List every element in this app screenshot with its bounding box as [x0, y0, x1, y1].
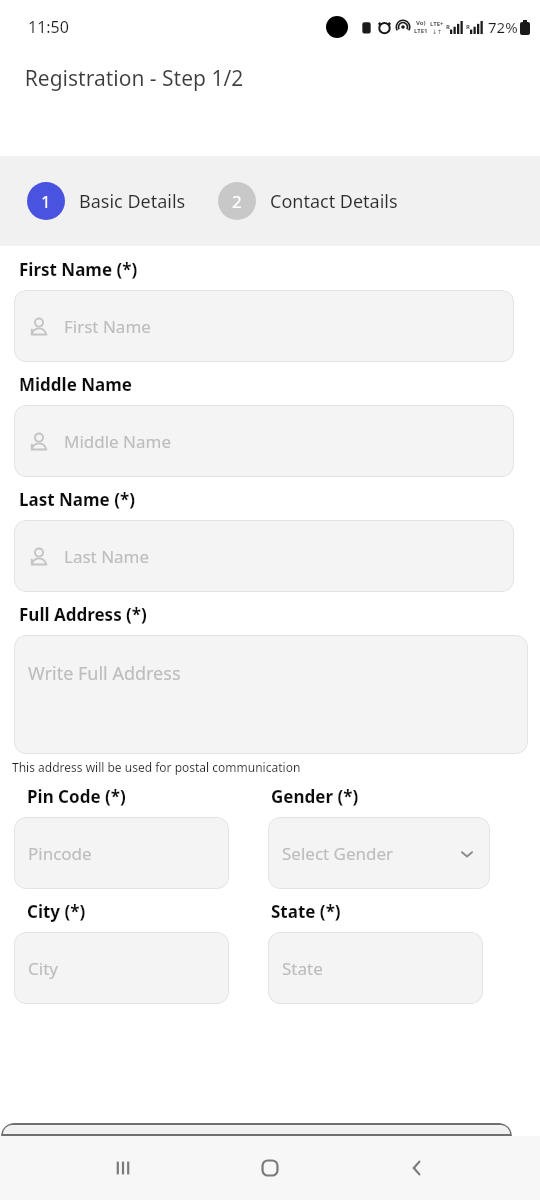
- staticText: Registration - Step 1/2: [18, 64, 250, 93]
- button[interactable]: City: [14, 932, 229, 1004]
- staticText: ↓↑: [432, 28, 443, 35]
- button[interactable]: Middle Name: [14, 405, 514, 477]
- staticText: 72%: [488, 17, 518, 37]
- button[interactable]: First Name: [14, 290, 514, 362]
- button[interactable]: Home: [246, 1144, 294, 1192]
- staticText: Basic Details: [79, 189, 186, 214]
- staticText: Pin Code (*): [27, 785, 126, 808]
- staticText: City: [28, 957, 58, 980]
- button[interactable]: 2: [218, 182, 398, 220]
- button[interactable]: Pincode: [14, 817, 229, 889]
- staticText: Vo): [416, 19, 426, 27]
- staticText: Last Name: [64, 545, 150, 568]
- staticText: Pincode: [28, 842, 92, 865]
- button[interactable]: 1: [27, 182, 186, 220]
- staticText: State (*): [271, 900, 341, 923]
- staticText: LTE1: [414, 27, 428, 35]
- staticText: LTE+: [430, 20, 444, 28]
- staticText: Gender (*): [271, 785, 359, 808]
- staticText: Middle Name: [64, 430, 172, 453]
- staticText: 2: [232, 190, 242, 213]
- staticText: City (*): [27, 900, 86, 923]
- staticText: R: [446, 23, 450, 31]
- button[interactable]: Back: [393, 1144, 441, 1192]
- staticText: Select Gender: [282, 842, 394, 865]
- button[interactable]: Last Name: [14, 520, 514, 592]
- button[interactable]: Write Full Address: [14, 635, 528, 754]
- button[interactable]: State: [268, 932, 483, 1004]
- staticText: R: [466, 23, 470, 31]
- staticText: Middle Name: [19, 373, 132, 396]
- staticText: Write Full Address: [28, 661, 181, 686]
- staticText: 11:50: [28, 16, 69, 38]
- staticText: Full Address (*): [19, 603, 147, 626]
- staticText: State: [282, 957, 323, 980]
- staticText: First Name: [64, 315, 151, 338]
- button[interactable]: Next: [1, 1123, 512, 1136]
- staticText: Last Name (*): [19, 488, 135, 511]
- staticText: First Name (*): [19, 258, 138, 281]
- button[interactable]: Recent apps: [99, 1144, 147, 1192]
- button[interactable]: Select Gender: [268, 817, 490, 889]
- staticText: Contact Details: [270, 189, 398, 214]
- staticText: This address will be used for postal com…: [12, 759, 301, 775]
- staticText: 1: [41, 190, 51, 213]
